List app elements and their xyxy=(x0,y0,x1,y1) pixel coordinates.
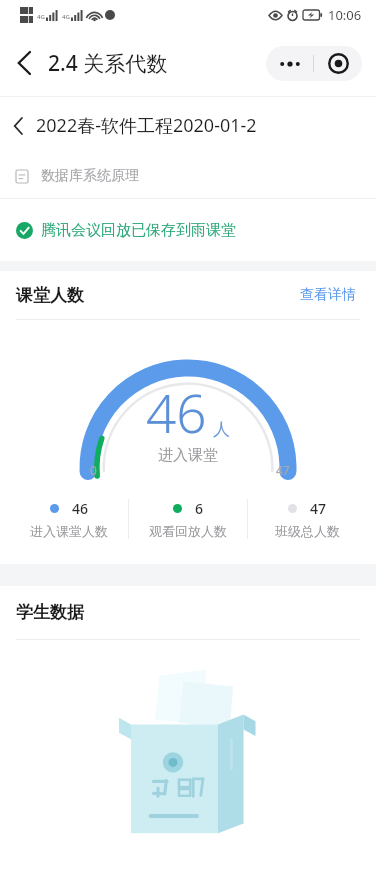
button[interactable]: Close xyxy=(314,46,362,81)
staticText: 2022春-软件工程2020-01-2 xyxy=(36,113,257,138)
staticText: 学生数据 xyxy=(16,602,84,623)
button[interactable]: 腾讯会议回放已保存到雨课堂 xyxy=(0,199,376,261)
button[interactable]: 查看详情 xyxy=(296,282,360,308)
staticText: 进入课堂 xyxy=(158,446,218,465)
button[interactable]: 6 xyxy=(129,499,247,539)
staticText: 人 xyxy=(213,419,230,440)
button[interactable]: More options xyxy=(266,46,313,81)
staticText: 0 xyxy=(90,462,97,478)
staticText: 查看详情 xyxy=(300,286,356,304)
staticText: 数据库系统原理 xyxy=(41,167,139,185)
staticText: 47 xyxy=(276,462,290,478)
staticText: 腾讯会议回放已保存到雨课堂 xyxy=(41,221,236,240)
staticText: 10:06 xyxy=(328,6,362,24)
button[interactable]: 46 xyxy=(10,499,128,539)
staticText: 进入课堂人数 xyxy=(30,523,108,539)
staticText: 46 xyxy=(146,376,207,448)
staticText: 4G xyxy=(37,13,45,21)
button[interactable]: 47 xyxy=(248,499,366,539)
staticText: 班级总人数 xyxy=(275,523,340,539)
button[interactable]: 2022春-软件工程2020-01-2 xyxy=(0,97,376,154)
button[interactable]: Back xyxy=(10,44,39,82)
staticText: 观看回放人数 xyxy=(149,523,227,539)
staticText: 4G xyxy=(62,13,70,21)
staticText: 47 xyxy=(310,499,327,518)
staticText: 6 xyxy=(195,499,204,518)
staticText: 46 xyxy=(72,499,89,518)
staticText: 课堂人数 xyxy=(16,285,84,306)
staticText: 2.4 关系代数 xyxy=(48,49,168,78)
